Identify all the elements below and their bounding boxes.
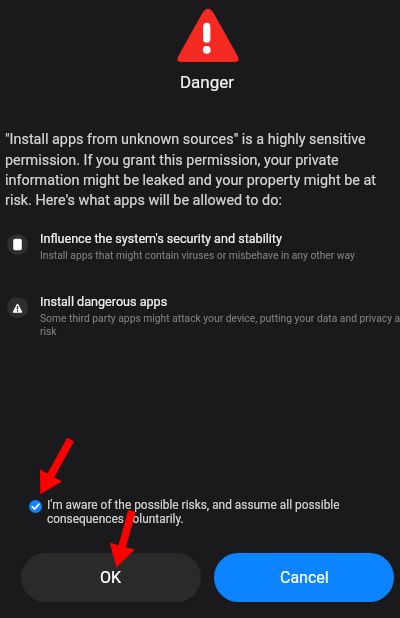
staticText: OK [100, 568, 122, 587]
button[interactable]: Accept risks checkbox, checked [29, 498, 374, 526]
staticText: Influence the system's security and stab… [40, 231, 282, 246]
button[interactable]: Cancel [214, 553, 394, 602]
staticText: Cancel [280, 568, 329, 587]
staticText: I'm aware of the possible risks, and ass… [47, 498, 374, 526]
button[interactable]: OK [21, 553, 201, 602]
staticText: "Install apps from unknown sources" is a… [5, 131, 388, 208]
staticText: Danger [7, 72, 400, 92]
staticText: Install apps that might contain viruses … [40, 249, 355, 261]
staticText: Install dangerous apps [40, 294, 168, 309]
other: Accept risks checkbox, checked [29, 500, 42, 513]
staticText: Some third party apps might attack your … [40, 312, 400, 338]
